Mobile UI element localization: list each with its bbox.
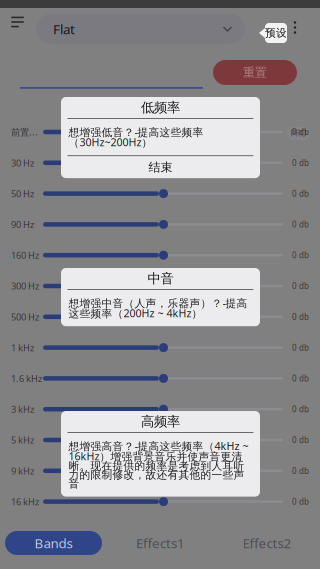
- staticText: 90 Hz: [11, 218, 34, 231]
- staticText: 160 Hz: [11, 249, 39, 261]
- staticText: PRO: [290, 128, 306, 139]
- staticText: 0 db: [292, 188, 309, 199]
- button[interactable]: 结束: [61, 156, 260, 178]
- staticText: 0 db: [292, 127, 309, 137]
- staticText: 0 db: [292, 311, 309, 322]
- staticText: 想增强高音？-提高这些频率（4kHz ~ 16kHz）增强背景音乐并使声音更清晰…: [68, 439, 248, 491]
- button[interactable]: Bands: [5, 531, 102, 555]
- staticText: 5 kHz: [11, 434, 34, 446]
- staticText: 9 kHz: [11, 465, 34, 477]
- staticText: 30 Hz: [11, 157, 34, 169]
- staticText: 0 db: [292, 157, 309, 168]
- staticText: 0 db: [292, 435, 309, 445]
- staticText: 结束: [148, 160, 172, 174]
- staticText: 16 kHz: [11, 495, 39, 508]
- staticText: 想增强中音（人声，乐器声）？-提高这些频率（200Hz ~ 4kHz）: [68, 296, 247, 320]
- staticText: 0 db: [292, 281, 309, 291]
- staticText: 0 db: [292, 404, 309, 414]
- staticText: 0 db: [292, 250, 309, 260]
- staticText: Effects1: [136, 534, 185, 552]
- staticText: Bands: [34, 534, 72, 552]
- staticText: 中音: [147, 270, 173, 287]
- staticText: 想增强低音？-提高这些频率（30Hz~200Hz）: [68, 125, 203, 149]
- staticText: 500 Hz: [11, 311, 39, 323]
- staticText: 0 db: [292, 219, 309, 230]
- button[interactable]: Flat: [36, 14, 245, 44]
- staticText: 0 db: [292, 496, 309, 507]
- staticText: 1 kHz: [11, 341, 34, 354]
- button[interactable]: Menu: [11, 15, 29, 29]
- staticText: Flat: [53, 20, 75, 38]
- staticText: 3 kHz: [11, 403, 34, 415]
- button[interactable]: More options: [289, 21, 301, 34]
- staticText: 低频率: [141, 99, 180, 116]
- staticText: 高频率: [141, 413, 180, 430]
- staticText: 1.6 kHz: [11, 372, 42, 385]
- staticText: 0 db: [292, 342, 309, 353]
- staticText: 预设: [265, 26, 287, 39]
- staticText: 重置: [243, 65, 267, 80]
- staticText: 前置放..: [11, 126, 42, 138]
- staticText: Effects2: [242, 534, 291, 552]
- button[interactable]: 重置: [213, 60, 297, 85]
- staticText: 50 Hz: [11, 187, 34, 200]
- button[interactable]: Effects1: [107, 531, 214, 555]
- button[interactable]: Effects2: [214, 531, 320, 555]
- staticText: 300 Hz: [11, 280, 39, 292]
- staticText: 0 db: [292, 373, 309, 384]
- staticText: 0 db: [292, 465, 309, 476]
